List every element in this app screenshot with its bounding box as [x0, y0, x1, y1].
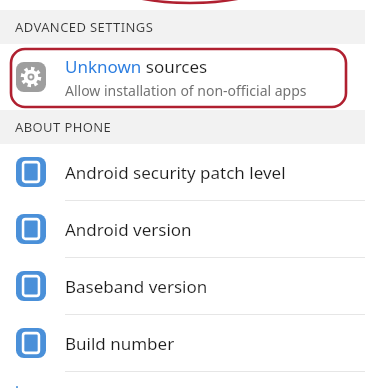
staticText: ABOUT PHONE	[15, 118, 112, 136]
staticText: Unknown sources	[65, 55, 208, 78]
button[interactable]: Android version	[0, 201, 365, 257]
button[interactable]: Android security patch level	[0, 144, 365, 200]
staticText: ADVANCED SETTINGS	[15, 18, 154, 36]
button[interactable]: Baseband version	[0, 258, 365, 314]
staticText: Baseband version	[65, 275, 208, 298]
button[interactable]: Build number	[0, 315, 365, 371]
staticText: Allow installation of non-official apps	[65, 81, 307, 100]
staticText: Build number	[65, 332, 175, 355]
staticText: Android security patch level	[65, 161, 286, 184]
button[interactable]: Unknown sources	[0, 44, 365, 110]
staticText: Android version	[65, 218, 192, 241]
